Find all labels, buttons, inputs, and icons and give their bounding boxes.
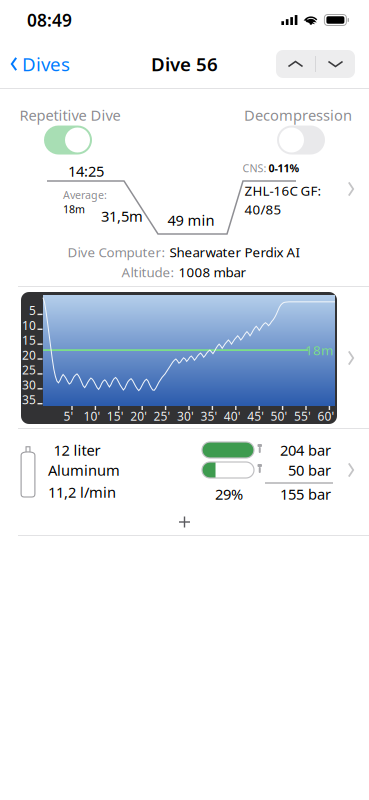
button[interactable]: Add cylinder [0,509,369,535]
staticText: 0-11% [268,161,299,175]
staticText: 18m [305,341,333,359]
staticText: Dive 56 [151,52,218,76]
button[interactable]: 5 [0,287,369,428]
staticText: 25' [154,408,171,424]
staticText: 40' [224,408,241,424]
staticText: 49 min [167,210,214,230]
staticText: 20' [130,408,147,424]
staticText: 20 [22,347,36,363]
button[interactable]: Next dive [316,50,355,78]
button[interactable]: Dives [0,44,70,84]
staticText: 50' [271,408,288,424]
staticText: 5 [29,302,36,318]
button[interactable]: 12 liter [0,429,369,509]
staticText: 60' [317,408,334,424]
staticText: 12 liter [53,440,100,460]
staticText: 25 [22,362,36,378]
staticText: Shearwater Perdix AI [169,243,300,261]
staticText: 35 [22,392,36,408]
staticText: 5' [63,408,73,424]
staticText: 155 bar [280,484,331,504]
staticText: 204 bar [280,440,331,460]
staticText: 14:25 [68,161,104,181]
staticText: 18m [63,202,85,216]
staticText: CNS: [242,161,266,175]
staticText: Average: [63,188,107,202]
staticText: 50 bar [288,460,331,480]
staticText: 30' [177,408,194,424]
staticText: 15 [22,332,36,348]
staticText: 11,2 l/min [48,482,116,502]
staticText: 40/85 [244,200,281,218]
staticText: Decompression [244,105,352,125]
button[interactable]: Repetitive Dive [0,89,369,286]
staticText: 08:49 [27,8,72,31]
staticText: Dives [22,52,70,76]
staticText: ZHL-16C GF: [244,182,321,199]
staticText: 10 [22,317,36,333]
button[interactable]: Previous dive [276,50,315,78]
staticText: 55' [294,408,311,424]
staticText: Aluminum [48,460,120,480]
staticText: 29% [215,484,243,504]
staticText: 15' [107,408,124,424]
staticText: 31,5m [101,206,143,226]
staticText: 1008 mbar [178,263,246,281]
staticText: Repetitive Dive [19,105,120,125]
staticText: 10' [83,408,100,424]
staticText: Altitude: [121,263,174,281]
staticText: Dive Computer: [67,243,165,261]
staticText: 45' [247,408,264,424]
staticText: 35' [200,408,217,424]
staticText: 30 [22,377,36,393]
